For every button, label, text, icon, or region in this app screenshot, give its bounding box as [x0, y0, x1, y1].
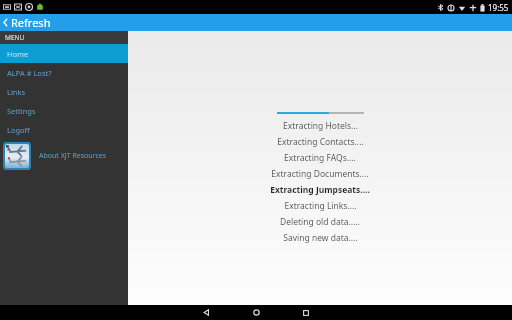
staticText: Refresh [11, 15, 51, 30]
staticText: Extracting FAQs.... [284, 152, 356, 164]
staticText: 19:55 [488, 2, 509, 13]
button[interactable]: Recent apps [289, 305, 323, 320]
button[interactable]: Back [0, 14, 57, 31]
staticText: Extracting Documents.... [271, 168, 369, 180]
staticText: Extracting Hotels... [283, 120, 358, 132]
staticText: Links [7, 87, 26, 97]
staticText: About XJT Resources [39, 151, 107, 161]
staticText: Settings [7, 106, 36, 116]
staticText: Extracting Jumpseats.... [270, 184, 370, 196]
button[interactable]: Logoff [0, 120, 128, 139]
staticText: Logoff [7, 125, 30, 135]
button[interactable]: Home [0, 44, 128, 63]
staticText: Extracting Contacts.... [277, 136, 364, 148]
other: Back [3, 18, 8, 27]
button[interactable]: ALPA # Lost? [0, 63, 128, 82]
button[interactable]: Back [189, 305, 223, 320]
staticText: Home [7, 49, 29, 59]
button[interactable]: Links [0, 82, 128, 101]
button[interactable]: Settings [0, 101, 128, 120]
staticText: Saving new data.... [283, 232, 358, 244]
staticText: MENU [5, 33, 25, 42]
staticText: ALPA # Lost? [7, 68, 52, 78]
staticText: Extracting Links.... [284, 200, 357, 212]
button[interactable]: Home [239, 305, 273, 320]
staticText: Deleting old data..... [280, 216, 360, 228]
button[interactable]: About XJT Resources [0, 139, 128, 173]
